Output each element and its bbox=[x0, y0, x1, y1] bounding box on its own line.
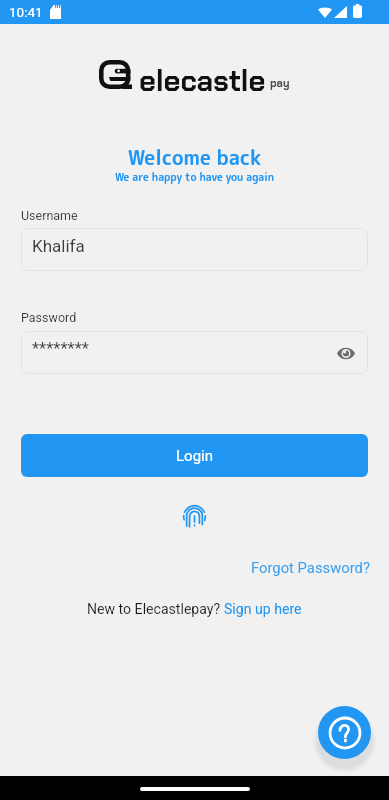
staticText: Login bbox=[176, 447, 213, 465]
button[interactable]: Khalifa bbox=[21, 228, 368, 271]
button[interactable]: Forgot Password? bbox=[251, 559, 370, 576]
staticText: New to Elecastlepay? bbox=[87, 601, 224, 618]
button[interactable]: Help bbox=[318, 706, 371, 759]
staticText: ******** bbox=[32, 339, 89, 358]
button[interactable]: Sign up here bbox=[224, 601, 302, 618]
staticText: Password bbox=[21, 310, 77, 325]
staticText: Khalifa bbox=[32, 236, 85, 256]
staticText: pay bbox=[270, 76, 290, 90]
staticText: We are happy to have you again bbox=[0, 170, 389, 185]
staticText: Username bbox=[21, 208, 78, 223]
button[interactable]: Fingerprint login bbox=[180, 503, 209, 532]
staticText: 10:41 bbox=[9, 4, 43, 20]
staticText: elecastle bbox=[139, 62, 266, 100]
staticText: Welcome back bbox=[0, 143, 389, 171]
button[interactable]: Login bbox=[21, 434, 368, 477]
button[interactable]: ******** bbox=[21, 331, 368, 374]
button[interactable]: Show password bbox=[334, 341, 358, 365]
